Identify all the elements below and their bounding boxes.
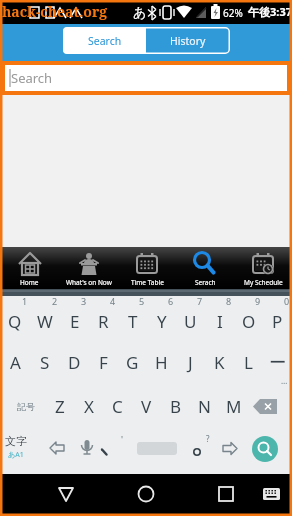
button[interactable] bbox=[74, 433, 100, 469]
button[interactable] bbox=[0, 474, 97, 516]
button[interactable]: H bbox=[147, 340, 176, 384]
staticText: … bbox=[281, 375, 288, 386]
button[interactable]: R bbox=[89, 296, 118, 340]
button[interactable]: M bbox=[219, 384, 248, 429]
staticText: 午後3:37 bbox=[248, 4, 292, 19]
staticText: A bbox=[10, 351, 21, 374]
button[interactable]: T bbox=[118, 296, 147, 340]
button[interactable]: ? bbox=[186, 433, 212, 469]
button[interactable]: E bbox=[60, 296, 89, 340]
staticText: P bbox=[272, 310, 283, 333]
staticText: 3 bbox=[81, 295, 87, 307]
staticText: 1 bbox=[22, 295, 28, 307]
button[interactable]: Serach bbox=[176, 247, 234, 289]
staticText: E bbox=[70, 310, 80, 333]
staticText: X bbox=[84, 395, 94, 418]
staticText: 7 bbox=[197, 295, 203, 307]
button[interactable]: C bbox=[103, 384, 132, 429]
button[interactable]: B bbox=[161, 384, 190, 429]
staticText: T bbox=[128, 310, 138, 333]
button[interactable]: Y bbox=[147, 296, 176, 340]
button[interactable]: P bbox=[263, 296, 292, 340]
staticText: S bbox=[40, 351, 50, 374]
button[interactable]: V bbox=[132, 384, 161, 429]
button[interactable]: Home bbox=[0, 247, 59, 289]
staticText: G bbox=[126, 351, 139, 374]
button[interactable] bbox=[217, 433, 243, 469]
button[interactable]: O bbox=[234, 296, 263, 340]
button[interactable]: Search bbox=[3, 63, 289, 93]
button[interactable] bbox=[44, 433, 70, 469]
staticText: Search bbox=[88, 34, 122, 48]
button[interactable]: Search bbox=[63, 27, 146, 54]
button[interactable]: A bbox=[0, 340, 30, 384]
staticText: D bbox=[68, 351, 81, 374]
staticText: Home bbox=[20, 278, 39, 287]
staticText: V bbox=[141, 395, 152, 418]
staticText: N bbox=[198, 395, 211, 418]
button[interactable]: ー bbox=[263, 340, 292, 384]
staticText: 6 bbox=[168, 295, 174, 307]
button[interactable]: F bbox=[89, 340, 118, 384]
button[interactable]: U bbox=[176, 296, 205, 340]
staticText: 9 bbox=[255, 295, 261, 307]
button[interactable]: W bbox=[30, 296, 60, 340]
staticText: 記号 bbox=[17, 401, 35, 412]
staticText: O bbox=[242, 310, 256, 333]
staticText: Serach bbox=[195, 278, 216, 287]
staticText: History bbox=[170, 34, 206, 48]
staticText: Z bbox=[55, 395, 65, 418]
staticText: ? bbox=[206, 433, 210, 444]
staticText: R bbox=[98, 310, 109, 333]
button[interactable] bbox=[194, 474, 291, 516]
button[interactable]: S bbox=[30, 340, 60, 384]
button[interactable]: 記号 bbox=[0, 384, 45, 429]
button[interactable]: 文字 bbox=[4, 432, 36, 470]
button[interactable] bbox=[248, 384, 292, 429]
button[interactable]: K bbox=[205, 340, 234, 384]
button[interactable]: N bbox=[190, 384, 219, 429]
button[interactable] bbox=[252, 436, 278, 462]
staticText: hack-cheat.org bbox=[2, 2, 108, 21]
button[interactable]: G bbox=[118, 340, 147, 384]
staticText: L bbox=[244, 351, 253, 374]
button[interactable]: Z bbox=[45, 384, 74, 429]
staticText: 4 bbox=[110, 295, 116, 307]
staticText: あ bbox=[133, 4, 147, 20]
button[interactable]: Time Table bbox=[118, 247, 176, 289]
staticText: 文字 bbox=[5, 434, 27, 448]
button[interactable]: X bbox=[74, 384, 103, 429]
staticText: ー bbox=[269, 352, 286, 373]
button[interactable]: I bbox=[205, 296, 234, 340]
staticText: あA1 bbox=[8, 450, 24, 460]
button[interactable]: L bbox=[234, 340, 263, 384]
staticText: W bbox=[37, 310, 53, 333]
staticText: F bbox=[99, 351, 108, 374]
staticText: K bbox=[214, 351, 225, 374]
button[interactable]: D bbox=[60, 340, 89, 384]
staticText: 62% bbox=[223, 6, 243, 20]
staticText: B bbox=[170, 395, 182, 418]
button[interactable] bbox=[97, 474, 194, 516]
staticText: M bbox=[226, 395, 242, 418]
staticText: U bbox=[184, 310, 197, 333]
button[interactable]: J bbox=[176, 340, 205, 384]
staticText: C bbox=[112, 395, 123, 418]
staticText: Time Table bbox=[131, 278, 164, 287]
staticText: 0 bbox=[284, 295, 290, 307]
button[interactable]: My Schedule bbox=[234, 247, 292, 289]
staticText: J bbox=[188, 351, 193, 374]
button[interactable]: ' bbox=[100, 433, 126, 469]
button[interactable]: History bbox=[146, 27, 230, 54]
button[interactable]: What's on Now bbox=[59, 247, 118, 289]
staticText: ' bbox=[121, 433, 124, 445]
staticText: 8 bbox=[226, 295, 232, 307]
staticText: Search bbox=[11, 69, 53, 87]
staticText: Y bbox=[157, 310, 167, 333]
staticText: 2 bbox=[52, 295, 58, 307]
staticText: 5 bbox=[139, 295, 145, 307]
staticText: What's on Now bbox=[66, 278, 112, 287]
staticText: I bbox=[217, 310, 223, 333]
button[interactable]: Q bbox=[0, 296, 30, 340]
